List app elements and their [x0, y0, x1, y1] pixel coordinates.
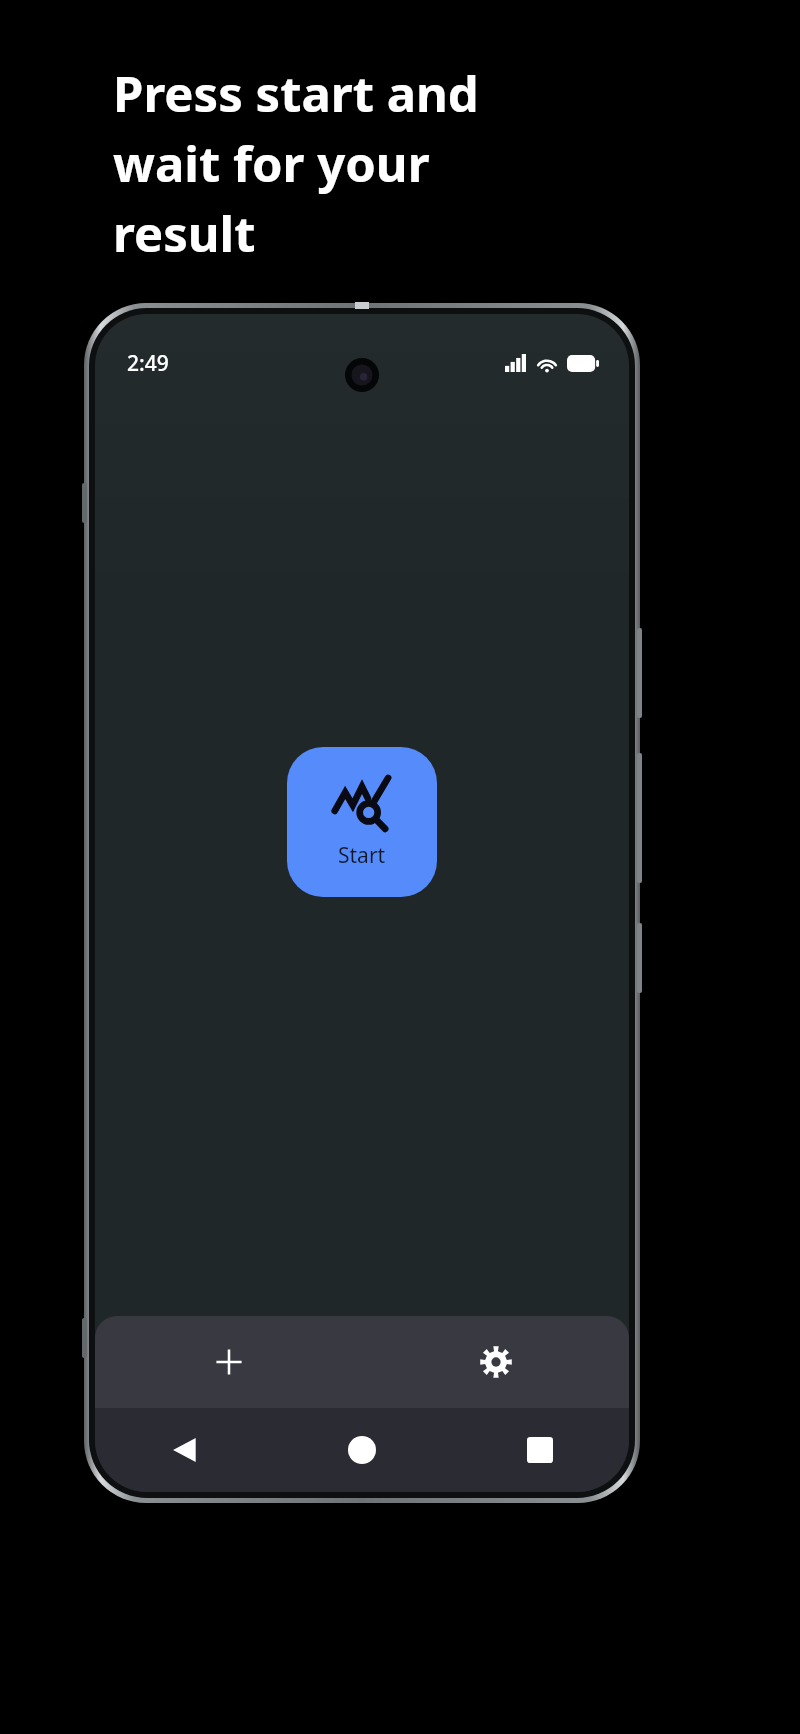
button[interactable]: Start: [287, 747, 437, 897]
staticText: Start: [338, 841, 386, 870]
button[interactable]: Home: [273, 1408, 451, 1492]
staticText: 2:49: [127, 349, 169, 378]
button[interactable]: Back: [95, 1408, 273, 1492]
button[interactable]: Add: [95, 1316, 362, 1408]
button[interactable]: Recent apps: [451, 1408, 629, 1492]
button[interactable]: Settings: [362, 1316, 629, 1408]
staticText: Press start and wait for your result: [113, 60, 583, 266]
